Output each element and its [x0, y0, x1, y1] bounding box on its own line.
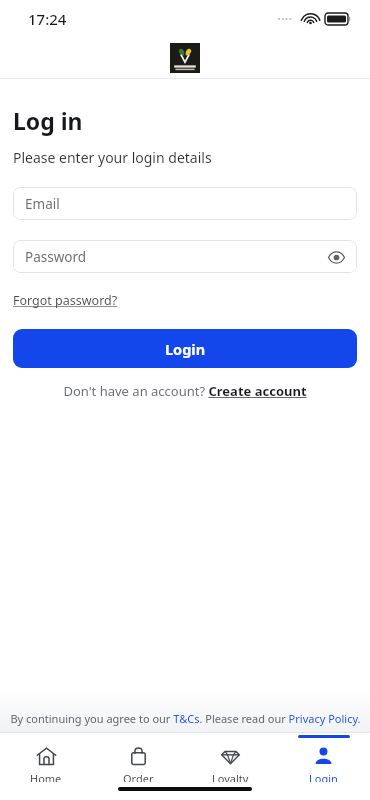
staticText: Loyalty	[212, 771, 249, 782]
staticText: Log in	[13, 105, 83, 136]
button[interactable]: Login	[277, 733, 370, 782]
button[interactable]: Forgot password?	[13, 292, 118, 309]
staticText: Login	[309, 771, 338, 782]
staticText: 17:24	[28, 9, 67, 29]
staticText: Don't have an account? Create account	[63, 382, 307, 400]
button[interactable]: Loyalty	[184, 733, 277, 782]
staticText: Email	[25, 195, 60, 213]
button[interactable]: Login	[13, 329, 357, 368]
button[interactable]: Show password	[325, 246, 347, 268]
staticText: Login	[165, 339, 206, 359]
staticText: Please enter your login details	[13, 148, 212, 167]
staticText: Order	[123, 771, 154, 782]
button[interactable]: Password	[13, 240, 357, 273]
button[interactable]: Email	[13, 187, 357, 220]
button[interactable]: Home	[0, 733, 92, 782]
staticText: Forgot password?	[13, 292, 118, 309]
staticText: Password	[25, 248, 87, 266]
staticText: Home	[30, 771, 62, 782]
button[interactable]: Don't have an account? Create account	[13, 382, 357, 400]
button[interactable]: Order	[92, 733, 184, 782]
staticText: By continuing you agree to our T&Cs. Ple…	[10, 711, 361, 726]
